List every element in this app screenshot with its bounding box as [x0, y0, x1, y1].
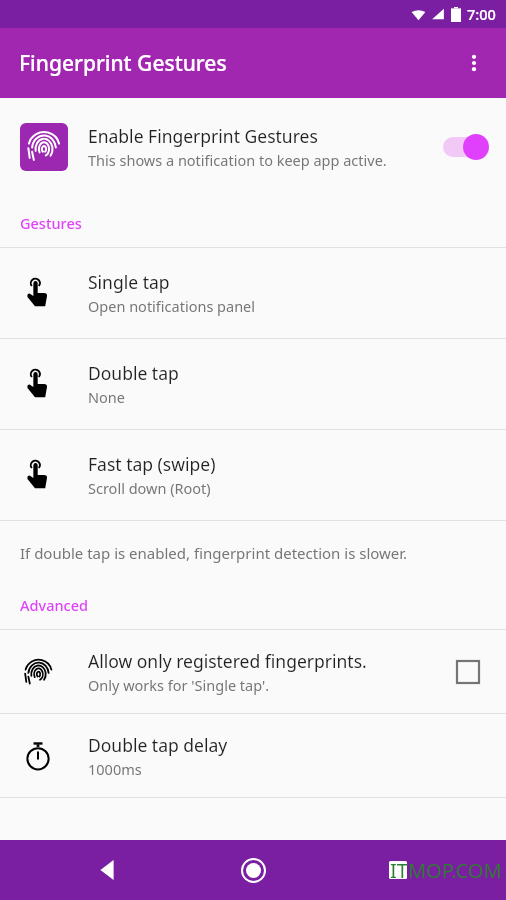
button[interactable]: Back: [84, 846, 132, 894]
staticText: Advanced: [20, 595, 88, 615]
button[interactable]: Home: [229, 846, 277, 894]
staticText: None: [88, 387, 125, 407]
button[interactable]: Enable fingerprint gestures toggle: [436, 127, 490, 167]
button[interactable]: Recents: [374, 846, 422, 894]
staticText: Double tap: [88, 361, 179, 385]
staticText: 7:00: [467, 4, 496, 24]
button[interactable]: Double tap delay: [0, 714, 506, 797]
staticText: Gestures: [20, 213, 82, 233]
button[interactable]: More options: [450, 39, 498, 87]
staticText: If double tap is enabled, fingerprint de…: [20, 543, 408, 563]
button[interactable]: Allow only registered fingerprints.: [0, 630, 506, 713]
staticText: Double tap delay: [88, 733, 228, 757]
staticText: Only works for 'Single tap'.: [88, 675, 270, 695]
button[interactable]: Single tap: [0, 248, 506, 338]
staticText: Open notifications panel: [88, 296, 256, 316]
staticText: Fast tap (swipe): [88, 452, 216, 476]
button[interactable]: Enable Fingerprint Gestures: [0, 98, 506, 195]
button[interactable]: Double tap: [0, 339, 506, 429]
staticText: Single tap: [88, 270, 170, 294]
staticText: This shows a notification to keep app ac…: [88, 150, 387, 170]
staticText: Enable Fingerprint Gestures: [88, 124, 318, 148]
button[interactable]: Allow only registered fingerprints check…: [446, 650, 490, 694]
button[interactable]: Fast tap (swipe): [0, 430, 506, 520]
staticText: ITMOP.COM: [390, 857, 502, 884]
staticText: Fingerprint Gestures: [19, 49, 227, 78]
staticText: 1000ms: [88, 759, 142, 779]
staticText: Scroll down (Root): [88, 478, 211, 498]
staticText: Allow only registered fingerprints.: [88, 649, 367, 673]
